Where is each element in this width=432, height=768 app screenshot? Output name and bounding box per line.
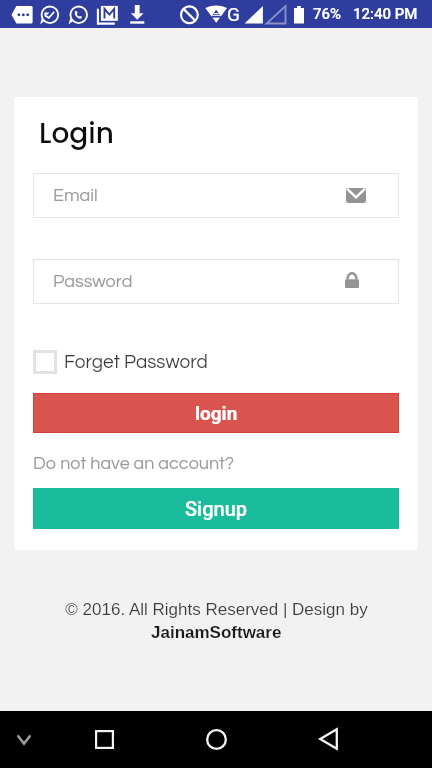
- button[interactable]: Password: [33, 259, 399, 304]
- button[interactable]: login: [33, 393, 399, 433]
- staticText: G: [227, 3, 240, 25]
- staticText: 76%: [313, 5, 342, 23]
- staticText: Do not have an account?: [33, 454, 234, 473]
- button[interactable]: Signup: [33, 488, 399, 529]
- staticText: Signup: [185, 497, 248, 520]
- button[interactable]: Hide keyboard: [4, 720, 44, 760]
- staticText: Password: [53, 272, 133, 291]
- button[interactable]: Email: [33, 173, 399, 218]
- staticText: Forget Password: [64, 352, 208, 372]
- staticText: Login: [39, 114, 114, 153]
- staticText: Email: [53, 186, 98, 205]
- staticText: login: [195, 402, 238, 424]
- button[interactable]: Home: [196, 719, 236, 759]
- staticText: © 2016. All Rights Reserved | Design by: [65, 600, 368, 619]
- staticText: 12:40 PM: [353, 5, 418, 23]
- staticText: JainamSoftware: [151, 623, 282, 642]
- button[interactable]: Back: [308, 719, 348, 759]
- button[interactable]: Recents: [84, 719, 124, 759]
- button[interactable]: Forget Password: [33, 350, 208, 374]
